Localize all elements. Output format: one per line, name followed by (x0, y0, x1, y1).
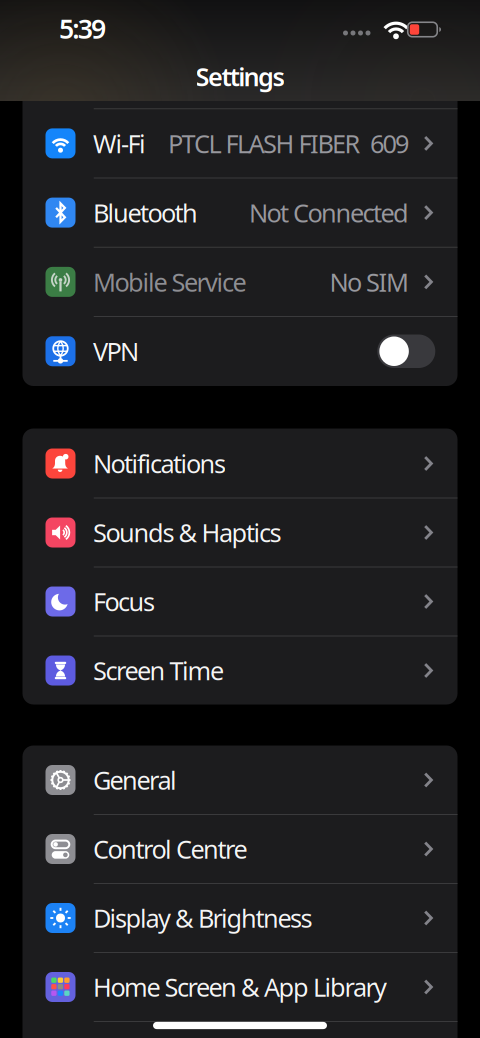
button[interactable]: Bluetooth (22, 178, 457, 247)
staticText: Focus (93, 585, 155, 618)
button[interactable]: Sounds & Haptics (22, 498, 457, 567)
button[interactable]: Mobile Service (22, 247, 457, 316)
button[interactable]: Notifications (22, 429, 457, 498)
staticText: Display & Brightness (93, 901, 312, 935)
staticText: No SIM (329, 265, 409, 299)
button[interactable]: Home Screen & App Library (22, 952, 457, 1021)
staticText: Screen Time (93, 654, 224, 687)
staticText: Bluetooth (93, 196, 198, 229)
staticText: General (93, 763, 177, 797)
button[interactable]: Wi-Fi (22, 109, 457, 178)
staticText: PTCL FLASH FIBER 609 (168, 127, 409, 160)
button[interactable]: Display & Brightness (22, 883, 457, 952)
button[interactable]: VPN (22, 317, 457, 386)
button[interactable]: General (22, 745, 457, 814)
staticText: 5:39 (59, 11, 106, 46)
staticText: Notifications (93, 447, 226, 480)
staticText: Wi-Fi (93, 127, 146, 160)
button[interactable]: Screen Time (22, 636, 457, 705)
staticText: Mobile Service (93, 265, 246, 299)
button[interactable]: Focus (22, 567, 457, 636)
staticText: Settings (196, 60, 284, 93)
staticText: Sounds & Haptics (93, 516, 281, 549)
staticText: Not Connected (249, 196, 409, 229)
staticText: Home Screen & App Library (93, 970, 387, 1004)
button[interactable]: VPN (377, 334, 435, 368)
staticText: Control Centre (93, 832, 247, 866)
button[interactable]: Control Centre (22, 814, 457, 883)
staticText: VPN (93, 334, 139, 368)
